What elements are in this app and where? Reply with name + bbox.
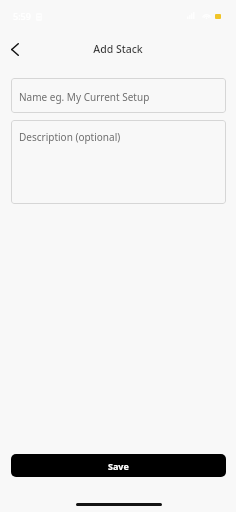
staticText: Add Stack [93, 42, 143, 56]
button[interactable]: Name eg. My Current Setup [11, 78, 226, 113]
button[interactable]: Description (optional) [11, 120, 226, 204]
staticText: Description (optional) [19, 130, 121, 144]
button[interactable]: Save [11, 454, 226, 477]
staticText: Name eg. My Current Setup [19, 90, 150, 104]
button[interactable]: Back [4, 38, 26, 60]
staticText: Save [108, 460, 129, 472]
